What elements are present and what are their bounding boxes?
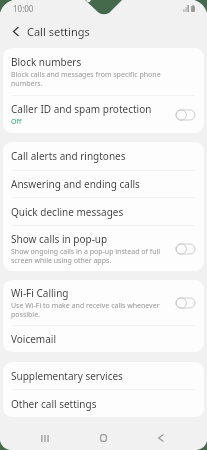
button[interactable]: Answering and ending calls (3, 171, 204, 197)
button[interactable]: Block numbers (3, 48, 204, 95)
button[interactable]: Home (80, 426, 126, 450)
staticText: Block calls and messages from specific p… (11, 70, 163, 88)
staticText: 10:00 (13, 3, 34, 14)
staticText: Call settings (27, 24, 90, 39)
staticText: Off (11, 117, 22, 127)
button[interactable]: Back (138, 426, 184, 450)
staticText: Block numbers (11, 55, 82, 69)
staticText: Use Wi-Fi to make and receive calls when… (11, 301, 163, 319)
button[interactable]: Voicemail (3, 326, 204, 352)
button[interactable]: Other call settings (3, 390, 204, 417)
button[interactable]: Supplementary services (3, 362, 204, 389)
staticText: Voicemail (11, 332, 56, 346)
staticText: Call alerts and ringtones (11, 149, 126, 163)
button[interactable]: Caller ID and spam protection toggle (171, 105, 199, 125)
staticText: Other call settings (11, 397, 97, 411)
staticText: Answering and ending calls (11, 177, 140, 191)
button[interactable]: Call alerts and ringtones (3, 142, 204, 170)
button[interactable]: Show calls in pop-up toggle (171, 239, 199, 259)
button[interactable]: Quick decline messages (3, 198, 204, 225)
button[interactable]: Recent apps (22, 426, 68, 450)
staticText: Quick decline messages (11, 205, 124, 219)
button[interactable]: Navigate up (5, 20, 27, 42)
button[interactable]: Wi-Fi Calling toggle (171, 293, 199, 313)
staticText: Show ongoing calls in a pop-up instead o… (11, 247, 163, 265)
staticText: Caller ID and spam protection (11, 102, 152, 116)
button[interactable]: Caller ID and spam protection (3, 96, 204, 133)
button[interactable]: Wi-Fi Calling (3, 280, 204, 325)
staticText: Show calls in pop-up (11, 232, 108, 246)
staticText: Supplementary services (11, 369, 123, 383)
staticText: Wi-Fi Calling (11, 286, 69, 300)
button[interactable]: Show calls in pop-up (3, 226, 204, 271)
